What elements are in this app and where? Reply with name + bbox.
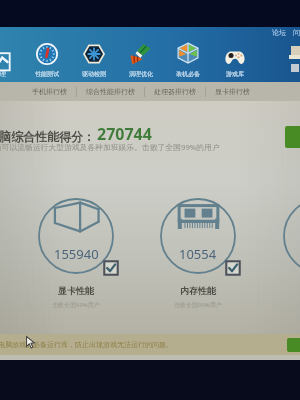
staticText: 显卡排行榜 xyxy=(215,87,250,96)
button[interactable]: 管理 xyxy=(0,35,15,82)
staticText: 显卡性能 xyxy=(58,285,94,296)
button[interactable]: 手机排行榜 xyxy=(23,82,76,101)
staticText: 处理器排行榜 xyxy=(154,87,196,96)
button[interactable]: 问 xyxy=(293,28,300,37)
staticText: 155940 xyxy=(54,245,99,263)
button[interactable]: 装机必备 xyxy=(173,35,203,82)
button[interactable]: 显卡排行榜 xyxy=(206,82,259,101)
staticText: 性能测试 xyxy=(35,70,59,78)
button[interactable]: 性能测试 xyxy=(32,35,62,82)
button[interactable]: 10554 xyxy=(160,198,236,274)
staticText: 击败全国99%用户 xyxy=(174,301,222,309)
button[interactable]: 游戏库 xyxy=(220,35,250,82)
staticText: 击败全国99%用户 xyxy=(52,301,100,309)
button[interactable]: 清理优化 xyxy=(126,35,156,82)
staticText: 电脑可以流畅运行大型游戏及各种加班娱乐。击败了全国99%的用户 xyxy=(0,142,220,153)
staticText: 电脑游戏的必备运行库，防止出现游戏无法运行的问题。 xyxy=(0,340,173,349)
staticText: 电脑综合性能得分： xyxy=(0,129,95,144)
staticText: 管理 xyxy=(0,70,6,78)
staticText: 装机必备 xyxy=(176,70,200,78)
button[interactable]: 论坛 xyxy=(272,28,286,37)
staticText: 清理优化 xyxy=(129,70,153,78)
staticText: 驱动检测 xyxy=(82,70,106,78)
staticText: 10554 xyxy=(179,245,217,263)
button[interactable]: 驱动检测 xyxy=(79,35,109,82)
staticText: 270744 xyxy=(97,123,152,145)
button[interactable]: 处理器排行榜 xyxy=(145,82,205,101)
button[interactable]: 安装 xyxy=(285,126,300,148)
button[interactable]: 综合性能排行榜 xyxy=(77,82,144,101)
button[interactable]: 155940 xyxy=(38,198,114,274)
staticText: 手机排行榜 xyxy=(32,87,67,96)
staticText: 游戏库 xyxy=(226,70,244,78)
staticText: 内存性能 xyxy=(180,285,216,296)
button[interactable]: 立即安装 xyxy=(287,338,300,352)
staticText: 综合性能排行榜 xyxy=(86,87,135,96)
